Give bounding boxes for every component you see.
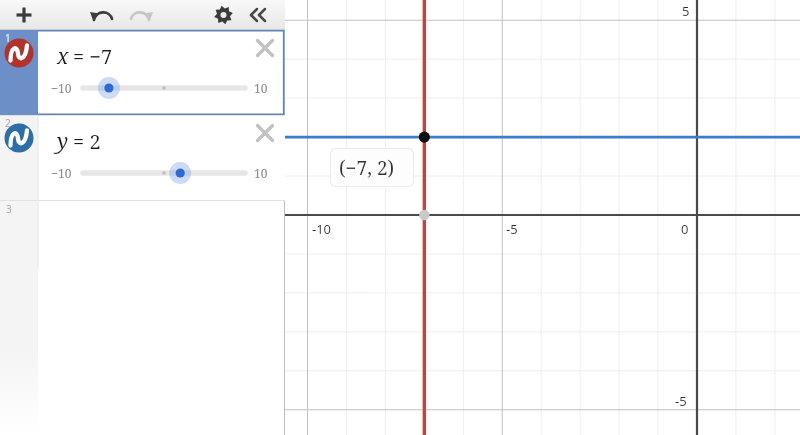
button[interactable]: Collapse panel — [246, 5, 272, 25]
button[interactable]: (−7, 2) — [330, 148, 414, 187]
button[interactable]: 1 — [0, 30, 285, 115]
staticText: -10 — [312, 220, 332, 238]
staticText: y — [57, 127, 69, 156]
staticText: 1 — [5, 31, 11, 45]
staticText: 0 — [681, 220, 689, 238]
staticText: = −7 — [73, 43, 113, 70]
staticText: -5 — [675, 392, 687, 410]
button[interactable]: 2 — [0, 115, 285, 200]
staticText: -5 — [506, 220, 518, 238]
staticText: = 2 — [73, 128, 101, 155]
button[interactable]: Add expression — [13, 5, 35, 25]
button[interactable]: Undo — [89, 5, 116, 25]
staticText: 5 — [682, 2, 690, 20]
staticText: 10 — [254, 165, 268, 181]
staticText: 3 — [6, 202, 12, 216]
staticText: −10 — [51, 80, 72, 96]
button[interactable]: Settings — [212, 4, 235, 26]
button[interactable]: Delete expression 1 — [253, 36, 277, 60]
button[interactable]: Redo — [127, 5, 154, 25]
staticText: (−7, 2) — [339, 155, 395, 181]
staticText: 10 — [254, 80, 268, 96]
button[interactable]: 3 — [0, 200, 285, 270]
button[interactable]: Delete expression 2 — [253, 121, 277, 145]
staticText: 2 — [5, 116, 11, 130]
staticText: −10 — [51, 165, 72, 181]
staticText: x — [57, 42, 69, 71]
